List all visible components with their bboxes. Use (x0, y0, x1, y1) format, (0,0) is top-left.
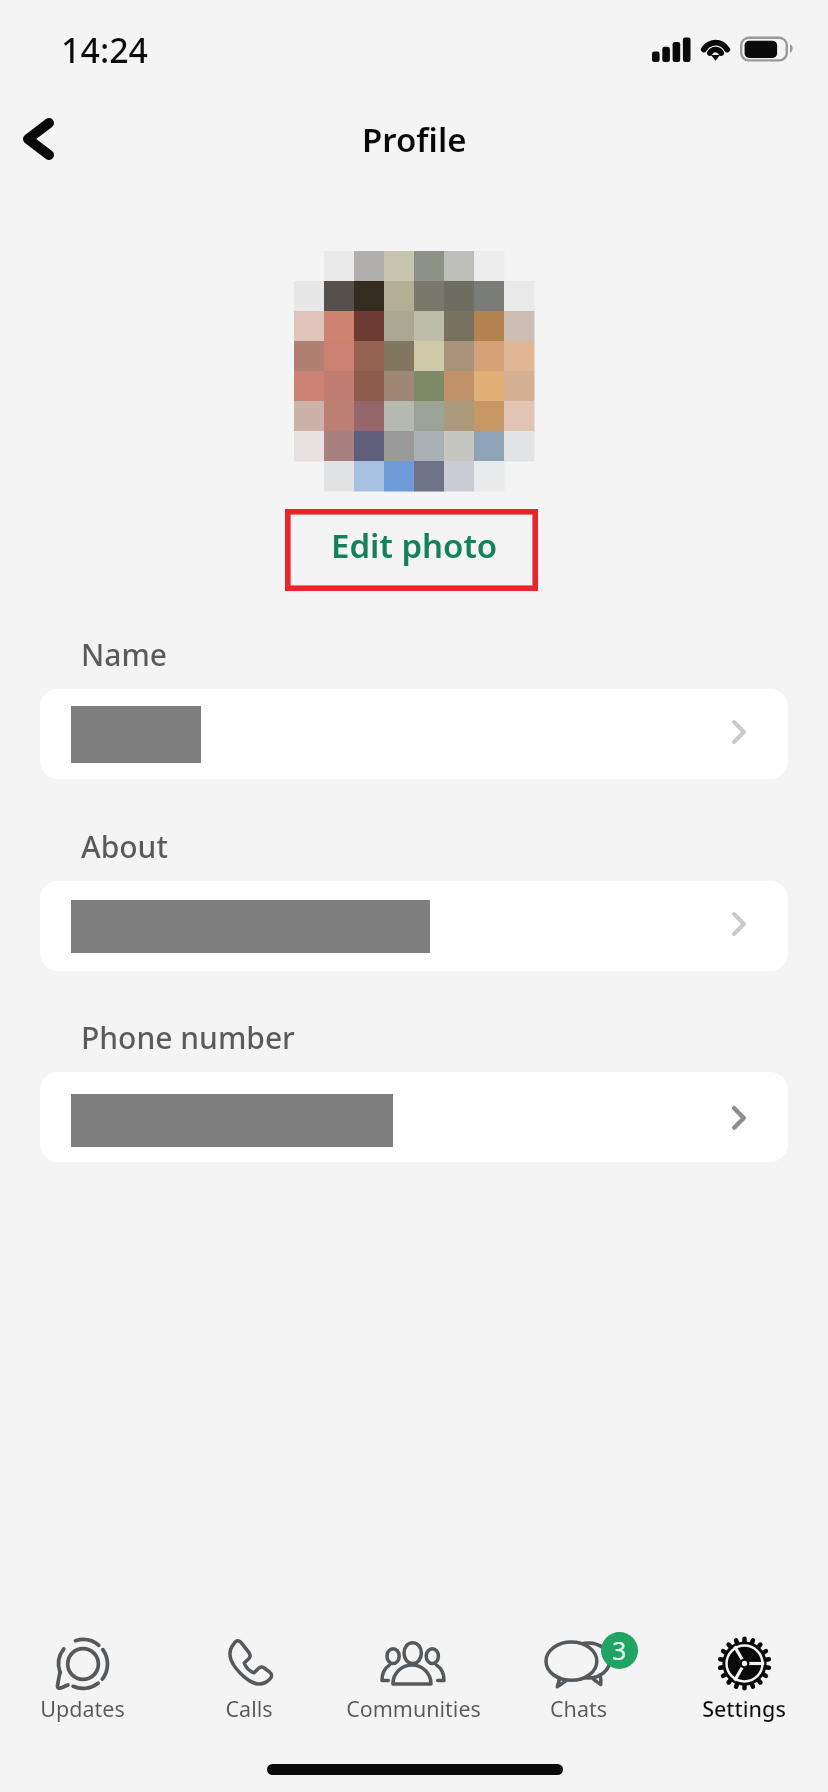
button[interactable]: Settings (664, 1630, 824, 1724)
button[interactable]: Back (6, 106, 70, 172)
staticText: Calls (225, 1694, 273, 1723)
staticText: Communities (346, 1694, 481, 1723)
button[interactable]: Communities (333, 1630, 493, 1724)
staticText: 14:24 (61, 27, 149, 73)
staticText: Updates (40, 1694, 125, 1723)
button[interactable] (40, 881, 788, 971)
button[interactable] (40, 1072, 788, 1162)
staticText: Edit photo (331, 523, 498, 568)
button[interactable]: Updates (2, 1630, 162, 1724)
staticText: About (81, 826, 168, 867)
button[interactable]: 3 (498, 1630, 658, 1724)
staticText: Phone number (81, 1017, 295, 1058)
staticText: 3 (612, 1633, 627, 1667)
staticText: Profile (362, 117, 467, 162)
button[interactable]: Calls (169, 1630, 329, 1724)
button[interactable] (40, 689, 788, 779)
staticText: Name (81, 634, 168, 675)
staticText: Chats (550, 1694, 607, 1723)
staticText: Settings (702, 1694, 786, 1723)
button[interactable]: Edit photo (285, 509, 538, 591)
